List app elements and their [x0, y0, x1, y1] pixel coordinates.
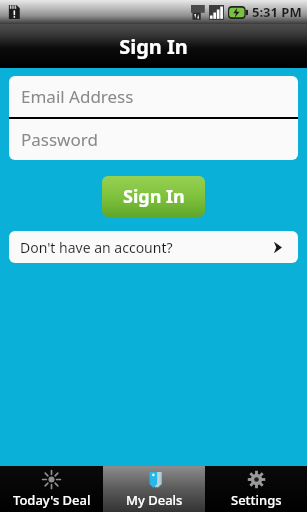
staticText: Don't have an account?	[20, 238, 270, 257]
button[interactable]: Sign In	[102, 176, 205, 217]
staticText: Password	[21, 128, 98, 151]
staticText: Today's Deal	[13, 491, 91, 509]
button[interactable]: Settings	[205, 466, 307, 512]
button[interactable]: Password	[9, 119, 298, 160]
other: Today's Deal	[42, 470, 61, 489]
staticText: Email Address	[21, 85, 134, 108]
button[interactable]: Don't have an account?	[9, 231, 298, 263]
other: Settings	[247, 470, 266, 489]
staticText: Settings	[231, 491, 282, 509]
staticText: Sign In	[119, 33, 188, 60]
button[interactable]: Email Address	[9, 76, 298, 117]
staticText: 5:31 PM	[252, 3, 302, 21]
staticText: Sign In	[123, 184, 185, 209]
other: My Deals	[145, 470, 164, 489]
button[interactable]: My Deals	[103, 466, 205, 512]
staticText: My Deals	[126, 491, 183, 509]
button[interactable]: Today's Deal	[0, 466, 103, 512]
